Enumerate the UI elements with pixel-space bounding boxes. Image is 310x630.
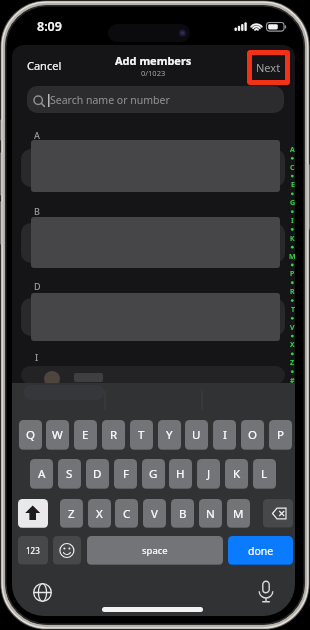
staticText: B: [34, 205, 50, 216]
staticText: Search name or number: [50, 93, 170, 107]
staticText: Q: [26, 427, 35, 443]
staticText: G: [290, 198, 295, 208]
button[interactable]: N: [199, 499, 222, 528]
staticText: E: [291, 180, 295, 190]
staticText: A: [38, 466, 46, 482]
staticText: A: [290, 145, 295, 155]
button[interactable]: [18, 499, 48, 528]
button[interactable]: V: [143, 499, 166, 528]
button[interactable]: [30, 580, 55, 605]
button[interactable]: B: [171, 499, 194, 528]
staticText: H: [176, 466, 185, 482]
button[interactable]: [263, 499, 293, 528]
button[interactable]: Y: [158, 420, 181, 450]
button[interactable]: Next: [247, 50, 290, 85]
staticText: S: [66, 466, 73, 482]
staticText: B: [179, 506, 187, 522]
staticText: N: [206, 506, 215, 522]
button[interactable]: R: [102, 420, 125, 450]
button[interactable]: [21, 366, 285, 384]
button[interactable]: [253, 578, 279, 606]
button[interactable]: S: [58, 459, 81, 489]
staticText: Y: [166, 427, 173, 443]
staticText: I: [35, 351, 51, 362]
staticText: X: [290, 340, 295, 350]
staticText: done: [248, 544, 274, 558]
staticText: C: [290, 163, 295, 173]
button[interactable]: I: [213, 420, 236, 450]
button[interactable]: Q: [19, 420, 42, 450]
button[interactable]: Search name or number: [27, 86, 284, 113]
staticText: P: [290, 269, 295, 279]
staticText: Z: [68, 506, 75, 522]
staticText: V: [151, 506, 158, 522]
staticText: G: [149, 466, 158, 482]
staticText: Z: [290, 358, 295, 368]
button[interactable]: [21, 149, 285, 187]
staticText: K: [290, 234, 295, 244]
button[interactable]: O: [241, 420, 264, 450]
button[interactable]: J: [197, 459, 220, 489]
staticText: Next: [256, 60, 281, 75]
button[interactable]: H: [169, 459, 192, 489]
button[interactable]: K: [225, 459, 248, 489]
button[interactable]: G: [142, 459, 165, 489]
button[interactable]: [21, 298, 285, 336]
button[interactable]: L: [253, 459, 276, 489]
staticText: P: [277, 427, 284, 443]
staticText: R: [110, 427, 118, 443]
button[interactable]: [21, 223, 285, 263]
staticText: O: [248, 427, 257, 443]
staticText: A: [34, 129, 50, 140]
staticText: M: [289, 252, 295, 262]
button[interactable]: D: [86, 459, 109, 489]
staticText: W: [52, 427, 63, 443]
staticText: C: [123, 506, 131, 522]
staticText: M: [233, 506, 244, 522]
staticText: L: [261, 466, 268, 482]
staticText: #: [290, 376, 295, 386]
button[interactable]: done: [228, 536, 293, 565]
button[interactable]: Cancel: [27, 58, 77, 76]
button[interactable]: P: [269, 420, 292, 450]
button[interactable]: space: [87, 536, 223, 565]
staticText: I: [223, 427, 227, 443]
staticText: D: [93, 466, 102, 482]
staticText: I: [291, 216, 294, 226]
staticText: 0/1023: [141, 68, 166, 78]
staticText: V: [290, 323, 295, 333]
button[interactable]: 123: [18, 536, 48, 565]
button[interactable]: U: [185, 420, 208, 450]
staticText: K: [233, 466, 241, 482]
staticText: U: [192, 427, 201, 443]
button[interactable]: X: [88, 499, 111, 528]
staticText: 123: [26, 545, 40, 556]
staticText: X: [96, 506, 103, 522]
button[interactable]: [53, 536, 81, 565]
button[interactable]: E: [74, 420, 97, 450]
staticText: T: [138, 427, 145, 443]
button[interactable]: M: [227, 499, 250, 528]
staticText: T: [291, 305, 295, 315]
staticText: space: [142, 544, 168, 557]
staticText: R: [290, 287, 295, 297]
staticText: 8:09: [37, 18, 81, 34]
staticText: Cancel: [27, 58, 62, 73]
staticText: F: [123, 466, 129, 482]
staticText: D: [34, 280, 50, 291]
button[interactable]: F: [114, 459, 137, 489]
button[interactable]: A: [30, 459, 53, 489]
staticText: E: [82, 427, 89, 443]
button[interactable]: T: [130, 420, 153, 450]
button[interactable]: W: [46, 420, 69, 450]
button[interactable]: Z: [60, 499, 83, 528]
staticText: Add members: [115, 53, 192, 67]
staticText: J: [207, 466, 211, 482]
button[interactable]: C: [115, 499, 138, 528]
